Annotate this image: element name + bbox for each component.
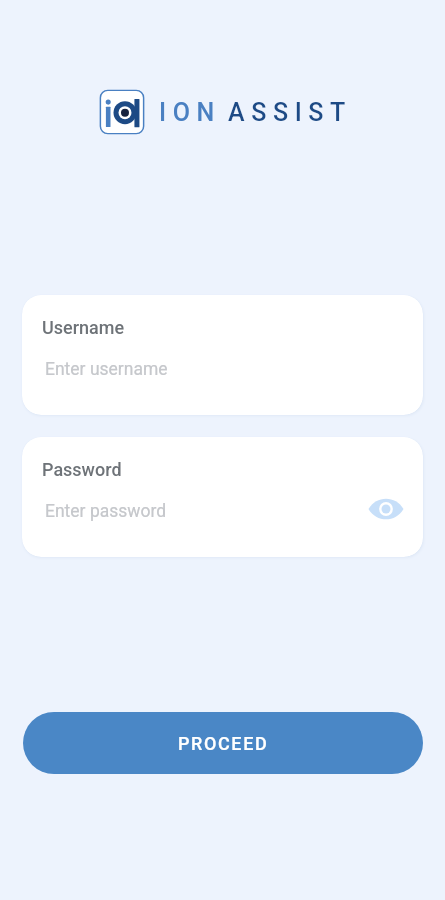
staticText: ASSIST [228, 98, 352, 127]
staticText: Username [42, 317, 125, 338]
button[interactable]: Password [22, 437, 423, 557]
button[interactable]: Show password [364, 487, 408, 531]
staticText: Enter username [45, 359, 168, 380]
staticText: Password [42, 459, 122, 480]
staticText: Enter password [45, 501, 167, 522]
staticText: PROCEED [178, 733, 269, 754]
staticText: ION [159, 98, 221, 127]
button[interactable]: Username [22, 295, 423, 415]
button[interactable]: PROCEED [23, 712, 423, 774]
